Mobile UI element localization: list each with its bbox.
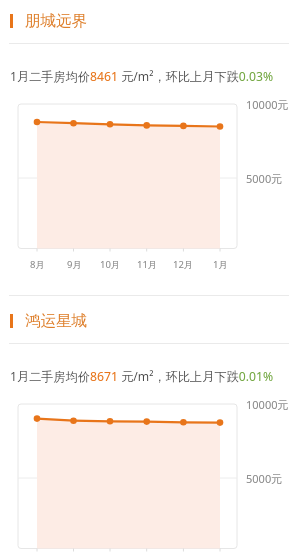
staticText: 9月 <box>67 258 82 271</box>
staticText: 1月二手房均价8671 元/m²，环比上月下跌0.01% <box>10 368 274 385</box>
button[interactable]: 鸿运星城 <box>0 308 298 333</box>
staticText: 5000元 <box>246 471 283 486</box>
staticText: 10000元 <box>246 397 289 412</box>
staticText: 11月 <box>137 258 158 271</box>
staticText: 12月 <box>173 258 194 271</box>
button[interactable] <box>0 0 298 300</box>
button[interactable]: 朋城远界 <box>0 8 298 33</box>
staticText: 朋城远界 <box>25 11 87 31</box>
staticText: 10000元 <box>246 97 289 112</box>
button[interactable] <box>0 300 298 557</box>
staticText: 5000元 <box>246 171 283 186</box>
staticText: 8月 <box>30 258 45 271</box>
staticText: 1月 <box>213 258 228 271</box>
staticText: 1月二手房均价8461 元/m²，环比上月下跌0.03% <box>10 68 274 85</box>
staticText: 10月 <box>100 258 121 271</box>
staticText: 鸿运星城 <box>25 311 87 331</box>
